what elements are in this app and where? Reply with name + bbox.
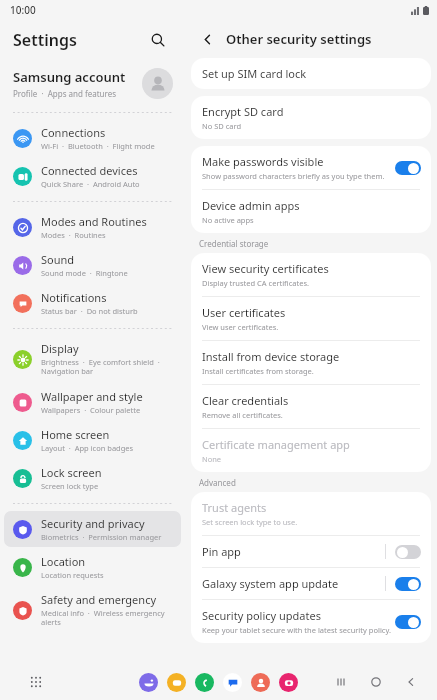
staticText: Biometrics · Permission manager <box>41 532 162 542</box>
staticText: Profile · Apps and features <box>13 88 117 99</box>
staticText: Location requests <box>41 570 104 580</box>
button[interactable]: Sound <box>4 247 181 283</box>
button[interactable]: Certificate management app <box>191 429 431 472</box>
staticText: Home screen <box>41 427 110 442</box>
button[interactable]: Home <box>367 673 385 691</box>
staticText: Certificate management app <box>202 437 350 452</box>
staticText: Set up SIM card lock <box>202 66 307 81</box>
staticText: Advanced <box>199 477 236 488</box>
staticText: No active apps <box>202 215 254 225</box>
button[interactable]: Install from device storage <box>191 341 431 384</box>
button[interactable]: Off <box>395 545 421 559</box>
staticText: Wallpaper and style <box>41 389 143 404</box>
button[interactable]: files <box>167 673 186 692</box>
button[interactable]: Back <box>402 673 420 691</box>
button[interactable]: camera <box>279 673 298 692</box>
staticText: Location <box>41 554 86 569</box>
button[interactable]: Location <box>4 549 181 585</box>
staticText: Make passwords visible <box>202 154 324 169</box>
button[interactable]: Set up SIM card lock <box>191 58 431 89</box>
staticText: Remove all certificates. <box>202 410 283 420</box>
staticText: Brightness · Eye comfort shield · Naviga… <box>41 357 175 377</box>
button[interactable]: Home screen <box>4 422 181 458</box>
button[interactable]: Samsung account <box>0 60 185 106</box>
staticText: Settings <box>13 29 77 51</box>
staticText: Credential storage <box>199 238 269 249</box>
staticText: Sound <box>41 252 75 267</box>
staticText: Galaxy system app update <box>202 576 339 591</box>
staticText: No SD card <box>202 121 242 131</box>
staticText: Safety and emergency <box>41 592 157 607</box>
staticText: Other security settings <box>226 30 372 48</box>
staticText: Notifications <box>41 290 107 305</box>
staticText: User certificates <box>202 305 286 320</box>
button[interactable]: Apps <box>25 671 47 693</box>
button[interactable]: Wallpaper and style <box>4 384 181 420</box>
staticText: Pin app <box>202 544 241 559</box>
staticText: 10:00 <box>10 3 36 17</box>
button[interactable]: Modes and Routines <box>4 209 181 245</box>
staticText: Display trusted CA certificates. <box>202 278 309 288</box>
staticText: Device admin apps <box>202 198 300 213</box>
staticText: Screen lock type <box>41 481 99 491</box>
button[interactable]: Make passwords visible <box>191 146 431 189</box>
staticText: Quick Share · Android Auto <box>41 179 140 189</box>
button[interactable]: Connected devices <box>4 158 181 194</box>
button[interactable]: Trust agents <box>191 492 431 535</box>
staticText: Status bar · Do not disturb <box>41 306 138 316</box>
staticText: View security certificates <box>202 261 329 276</box>
button[interactable]: Encrypt SD card <box>191 96 431 139</box>
staticText: Install certificates from storage. <box>202 366 314 376</box>
button[interactable]: Lock screen <box>4 460 181 496</box>
staticText: Security policy updates <box>202 608 321 623</box>
button[interactable]: Clear credentials <box>191 385 431 428</box>
staticText: Show password characters briefly as you … <box>202 171 385 181</box>
button[interactable]: Device admin apps <box>191 190 431 233</box>
button[interactable]: View security certificates <box>191 253 431 296</box>
button[interactable]: Security and privacy <box>4 511 181 547</box>
staticText: Keep your tablet secure with the latest … <box>202 625 391 635</box>
button[interactable]: Pin app <box>191 536 431 567</box>
staticText: Clear credentials <box>202 393 289 408</box>
staticText: Lock screen <box>41 465 102 480</box>
staticText: Medical info · Wireless emergency alerts <box>41 608 175 628</box>
staticText: Modes · Routines <box>41 230 106 240</box>
button[interactable]: User certificates <box>191 297 431 340</box>
button[interactable]: Search <box>145 27 171 53</box>
staticText: Connected devices <box>41 163 138 178</box>
button[interactable]: Security policy updates <box>191 600 431 643</box>
staticText: Samsung account <box>13 68 126 86</box>
staticText: Security and privacy <box>41 516 145 531</box>
button[interactable]: Recents <box>332 673 350 691</box>
button[interactable]: phone <box>195 673 214 692</box>
staticText: Set screen lock type to use. <box>202 517 298 527</box>
button[interactable]: Back <box>196 28 218 50</box>
button[interactable]: internet <box>139 673 158 692</box>
button[interactable]: Galaxy system app update <box>191 568 431 599</box>
button[interactable]: messages <box>223 673 242 692</box>
button[interactable]: Connections <box>4 120 181 156</box>
staticText: Trust agents <box>202 500 267 515</box>
staticText: View user certificates. <box>202 322 279 332</box>
staticText: Modes and Routines <box>41 214 147 229</box>
button[interactable]: On <box>395 577 421 591</box>
button[interactable]: On <box>395 615 421 629</box>
staticText: None <box>202 454 222 464</box>
button[interactable]: Safety and emergency <box>4 587 181 633</box>
button[interactable]: contacts <box>251 673 270 692</box>
staticText: Wi-Fi · Bluetooth · Flight mode <box>41 141 155 151</box>
staticText: Install from device storage <box>202 349 340 364</box>
staticText: Sound mode · Ringtone <box>41 268 128 278</box>
staticText: Wallpapers · Colour palette <box>41 405 141 415</box>
staticText: Encrypt SD card <box>202 104 284 119</box>
button[interactable]: Notifications <box>4 285 181 321</box>
staticText: Connections <box>41 125 106 140</box>
button[interactable]: Display <box>4 336 181 382</box>
staticText: Layout · App icon badges <box>41 443 134 453</box>
staticText: Display <box>41 341 79 356</box>
button[interactable]: On <box>395 161 421 175</box>
